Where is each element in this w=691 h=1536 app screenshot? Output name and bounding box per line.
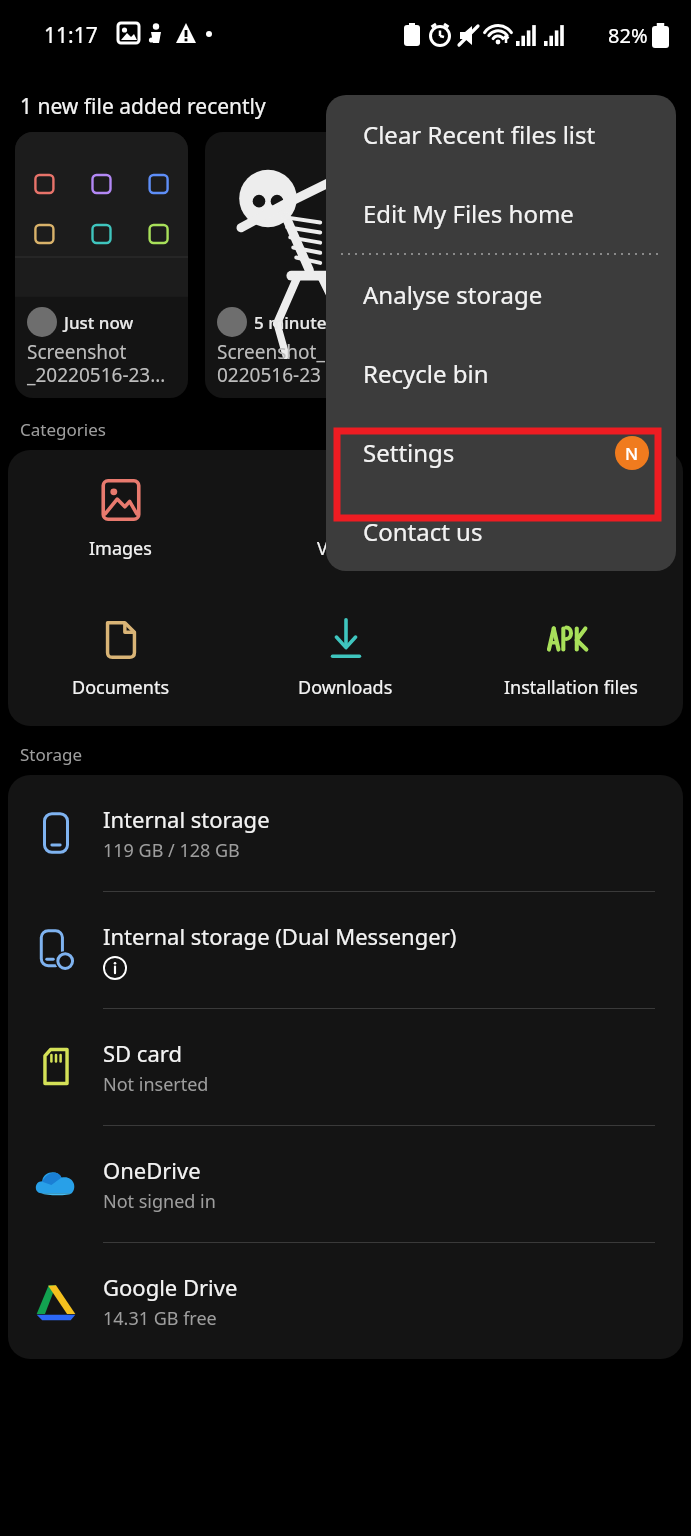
staticText: 11:17 — [44, 21, 98, 50]
staticText: Installation files — [504, 675, 638, 700]
staticText: Videos — [317, 536, 374, 561]
button[interactable]: 5 minutes a — [205, 132, 385, 398]
button[interactable] — [402, 132, 582, 398]
button[interactable]: Analyse storage — [326, 255, 676, 334]
staticText: Clear Recent files list — [363, 118, 596, 151]
button[interactable]: Documents — [8, 611, 233, 704]
button[interactable]: Audio — [458, 472, 683, 565]
staticText: OneDrive — [103, 1155, 201, 1185]
staticText: 119 GB / 128 GB — [103, 838, 240, 863]
button[interactable]: Just now — [15, 132, 188, 398]
staticText: Recycle bin — [363, 357, 489, 390]
staticText: 14.31 GB free — [103, 1306, 217, 1331]
button[interactable]: Internal storage (Dual Messenger) — [8, 892, 683, 1008]
button[interactable]: Images — [8, 472, 233, 565]
staticText: Storage — [20, 743, 83, 766]
staticText: Internal storage (Dual Messenger) — [103, 921, 457, 951]
button[interactable]: Contact us — [326, 492, 676, 571]
staticText: Not inserted — [103, 1072, 209, 1097]
staticText: Images — [89, 536, 152, 561]
staticText: SD card — [103, 1038, 182, 1068]
button[interactable]: Downloads — [233, 611, 458, 704]
button[interactable]: Edit My Files home — [326, 174, 676, 253]
button[interactable]: Internal storage — [8, 775, 683, 891]
staticText: Categories — [20, 418, 106, 441]
button[interactable]: Google Drive — [8, 1243, 683, 1359]
button[interactable]: SD card — [8, 1009, 683, 1125]
button[interactable]: Settings — [326, 413, 676, 492]
staticText: Documents — [72, 675, 170, 700]
button[interactable]: Recycle bin — [326, 334, 676, 413]
staticText: Internal storage — [103, 804, 270, 834]
button[interactable]: Videos — [233, 472, 458, 565]
staticText: 82% — [608, 22, 648, 49]
staticText: Google Drive — [103, 1272, 238, 1302]
button[interactable]: OneDrive — [8, 1126, 683, 1242]
staticText: 5 minutes a — [254, 311, 349, 334]
staticText: Not signed in — [103, 1189, 216, 1214]
staticText: Screenshot _20220516-23… — [27, 339, 166, 388]
staticText: Edit My Files home — [363, 197, 574, 230]
button[interactable]: Clear Recent files list — [326, 95, 676, 174]
staticText: Screenshot_ 0220516-23 — [217, 339, 325, 388]
staticText: N — [625, 442, 639, 465]
staticText: 1 new file added recently — [20, 92, 266, 121]
staticText: Downloads — [298, 675, 393, 700]
staticText: Settings — [363, 436, 455, 469]
staticText: Just now — [64, 311, 134, 334]
button[interactable]: Installation files — [458, 611, 683, 704]
staticText: Analyse storage — [363, 278, 543, 311]
staticText: Contact us — [363, 515, 483, 548]
